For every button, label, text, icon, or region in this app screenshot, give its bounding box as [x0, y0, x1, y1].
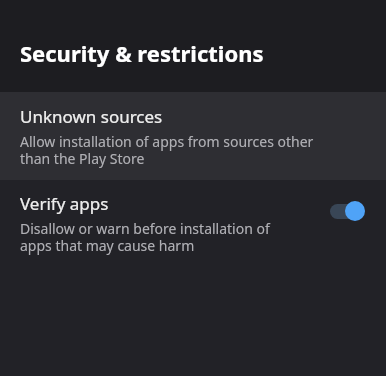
staticText: Verify apps [20, 192, 109, 215]
button[interactable]: Verify apps toggle, on [330, 194, 368, 228]
button[interactable]: Verify apps [0, 180, 386, 272]
button[interactable]: Unknown sources [0, 92, 386, 180]
staticText: Security & restrictions [20, 38, 264, 68]
staticText: Disallow or warn before installation of … [20, 219, 288, 255]
staticText: Allow installation of apps from sources … [20, 132, 325, 168]
staticText: Unknown sources [20, 105, 163, 128]
